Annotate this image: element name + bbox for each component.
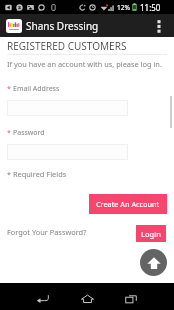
button[interactable]: Back	[31, 286, 55, 310]
button[interactable]: Recent apps	[119, 286, 143, 310]
button[interactable]: Scroll to top	[140, 249, 167, 276]
staticText: Create An Account	[96, 199, 160, 209]
button[interactable]: More options	[149, 16, 169, 36]
button[interactable]	[7, 100, 128, 116]
staticText: Login	[141, 229, 161, 239]
staticText: 11:50	[140, 2, 161, 13]
button[interactable]: Create An Account	[89, 194, 167, 214]
button[interactable]	[7, 144, 128, 160]
staticText: REGISTERED CUSTOMERS	[7, 39, 127, 53]
button[interactable]: Home	[75, 286, 99, 310]
staticText: 12%	[117, 3, 130, 12]
staticText: * Required Fields	[7, 169, 67, 179]
staticText: Shans Dressing	[26, 19, 99, 33]
staticText: Password	[13, 128, 45, 138]
button[interactable]: Login	[136, 225, 166, 242]
staticText: *	[7, 84, 13, 94]
button[interactable]: Shans Dressing logo	[6, 19, 22, 33]
staticText: If you have an account with us, please l…	[7, 59, 162, 69]
staticText: *	[7, 128, 13, 138]
staticText: Email Address	[13, 84, 60, 94]
button[interactable]: Forgot Your Password?	[7, 227, 87, 237]
